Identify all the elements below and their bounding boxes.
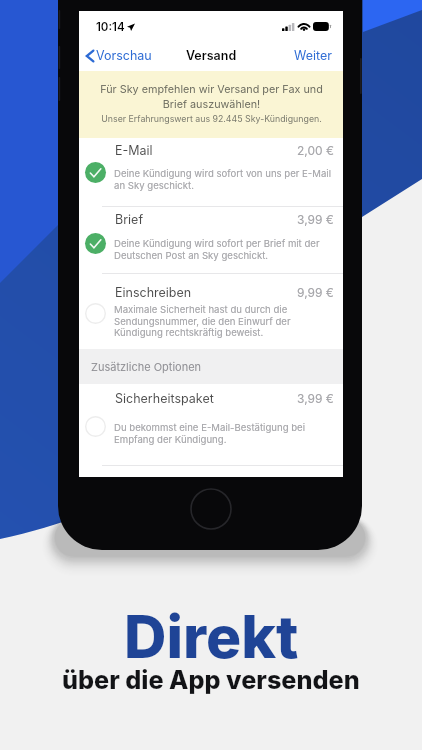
staticText: Einschreiben (115, 285, 192, 300)
staticText: Deine Kündigung wird sofort per Brief mi… (114, 238, 320, 261)
staticText: Sicherheitspaket (115, 391, 214, 406)
staticText: 2,00 € (297, 143, 334, 158)
staticText: 9,99 € (297, 285, 334, 300)
staticText: Für Sky empfehlen wir Versand per Fax un… (100, 83, 323, 111)
staticText: 10:14 (96, 20, 125, 34)
staticText: 3,99 € (297, 212, 334, 227)
button[interactable] (79, 206, 343, 272)
staticText: Deine Kündigung wird sofort von uns per … (114, 168, 331, 191)
button[interactable] (79, 138, 343, 207)
staticText: Weiter (294, 48, 332, 63)
staticText: Zusätzliche Optionen (91, 360, 202, 373)
staticText: Vorschau (96, 48, 152, 63)
staticText: über die App versenden (62, 665, 360, 695)
staticText: Unser Erfahrungswert aus 92.445 Sky-Künd… (101, 113, 322, 124)
staticText: 3,99 € (297, 391, 334, 406)
button[interactable]: Vorschau (79, 44, 158, 67)
staticText: Brief (115, 212, 144, 227)
staticText: Maximale Sicherheit hast du durch die Se… (114, 304, 291, 338)
button[interactable]: Weiter (286, 44, 343, 67)
button[interactable] (79, 273, 343, 350)
staticText: E-Mail (115, 143, 153, 158)
staticText: Du bekommst eine E-Mail-Bestätigung bei … (114, 422, 306, 445)
staticText: Direkt (124, 601, 299, 672)
button[interactable] (79, 384, 343, 466)
staticText: Versand (186, 48, 237, 63)
